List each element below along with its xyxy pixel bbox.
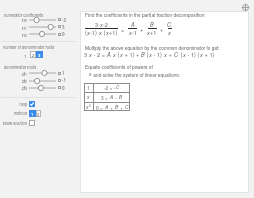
staticText: +1) — [109, 29, 118, 37]
staticText: A — [105, 104, 109, 111]
button[interactable]: Open n2 input field — [58, 33, 61, 36]
button[interactable]: Resize — [241, 3, 250, 12]
staticText: 3 — [38, 52, 41, 58]
staticText: C — [116, 84, 120, 91]
staticText: = — [118, 26, 128, 34]
staticText: 2 — [25, 33, 27, 38]
staticText: ( — [85, 29, 87, 37]
staticText: + — [157, 26, 167, 34]
staticText: 0 — [62, 31, 65, 38]
staticText: - 2 = — [92, 51, 107, 59]
staticText: B — [141, 51, 145, 59]
staticText: x — [147, 29, 150, 37]
staticText: Multiply the above equation by the commo… — [85, 44, 220, 51]
button[interactable]: 2 — [36, 110, 41, 117]
staticText: x — [87, 94, 90, 101]
button[interactable]: n0 slider — [28, 16, 58, 24]
staticText: B — [150, 21, 154, 29]
staticText: A — [107, 51, 111, 59]
button[interactable]: Open d3 input field — [58, 86, 61, 89]
staticText: 2 — [89, 103, 91, 108]
staticText: 1 — [62, 70, 65, 77]
button[interactable]: 2 — [30, 51, 36, 58]
staticText: + 1) + — [123, 51, 141, 59]
staticText: numerator coefficients — [4, 12, 44, 18]
button[interactable]: Open d1 input field — [58, 72, 61, 75]
staticText: -1) — [90, 29, 99, 37]
staticText: 0 = — [96, 104, 105, 111]
button[interactable]: Open d2 input field — [58, 79, 61, 82]
staticText: denominator roots — [4, 64, 37, 70]
staticText: 2 — [32, 52, 35, 58]
staticText: -2 — [103, 21, 108, 29]
staticText: A — [131, 21, 135, 29]
staticText: + — [109, 104, 115, 111]
staticText: 3 — [95, 21, 100, 29]
staticText: x — [183, 51, 186, 59]
staticText: x — [129, 29, 132, 37]
staticText: + — [119, 104, 125, 111]
staticText: 2 — [25, 79, 27, 84]
staticText: ( — [179, 51, 183, 59]
staticText: -2 = - — [104, 84, 116, 91]
staticText: 3 — [62, 24, 65, 31]
staticText: Find the coefficients in the partial fra… — [85, 11, 206, 18]
staticText: + — [167, 51, 174, 59]
staticText: A — [110, 94, 114, 101]
staticText: n — [22, 24, 25, 31]
staticText: 1 — [25, 26, 27, 31]
staticText: number of denominator roots — [3, 44, 55, 50]
staticText: + — [137, 26, 147, 34]
staticText: x — [113, 51, 116, 59]
staticText: x — [164, 51, 167, 59]
button[interactable]: help — [29, 101, 35, 107]
staticText: and solve the system of linear equations… — [92, 71, 181, 78]
staticText: x — [99, 29, 102, 37]
staticText: d — [22, 84, 25, 91]
staticText: x — [120, 51, 123, 59]
staticText: 0 — [25, 18, 27, 23]
staticText: n — [22, 31, 25, 38]
button[interactable]: d1 slider — [28, 69, 58, 77]
staticText: 1 — [24, 53, 27, 59]
staticText: 3 — [84, 51, 89, 59]
staticText: ( — [102, 29, 106, 37]
button[interactable]: Open n1 input field — [58, 25, 61, 28]
staticText: C — [125, 104, 129, 111]
staticText: -2 — [62, 17, 67, 24]
staticText: 3 — [25, 86, 27, 91]
staticText: x — [89, 51, 92, 59]
staticText: 1 — [87, 84, 90, 91]
staticText: d — [22, 77, 25, 84]
staticText: d — [22, 70, 25, 77]
staticText: - 1) — [152, 51, 164, 59]
staticText: C — [174, 51, 179, 59]
button[interactable]: d2 slider — [28, 77, 58, 85]
staticText: -1 — [62, 77, 67, 84]
button[interactable]: 3 — [36, 51, 43, 58]
staticText: x — [200, 51, 203, 59]
staticText: B — [119, 94, 123, 101]
staticText: 0 — [62, 85, 65, 92]
staticText: 1 — [31, 111, 34, 117]
button[interactable]: n2 slider — [28, 30, 58, 38]
staticText: x — [87, 29, 90, 37]
staticText: help — [0, 101, 27, 107]
staticText: method — [0, 110, 27, 116]
button[interactable]: Open n0 input field — [58, 18, 61, 21]
staticText: show solution — [0, 120, 27, 126]
staticText: 2 — [37, 111, 40, 117]
button[interactable]: 1 — [29, 110, 36, 117]
staticText: x — [149, 51, 152, 59]
staticText: x — [100, 21, 103, 29]
staticText: - — [114, 94, 119, 101]
staticText: ( — [145, 51, 149, 59]
button[interactable]: show solution — [29, 120, 35, 126]
staticText: x — [168, 29, 171, 37]
staticText: + 1) — [203, 51, 215, 59]
staticText: n — [22, 16, 25, 23]
staticText: Equate coefficients of powers of — [85, 63, 153, 70]
button[interactable]: d3 slider — [28, 84, 58, 92]
button[interactable]: n1 slider — [28, 23, 58, 31]
staticText: x — [86, 104, 89, 111]
